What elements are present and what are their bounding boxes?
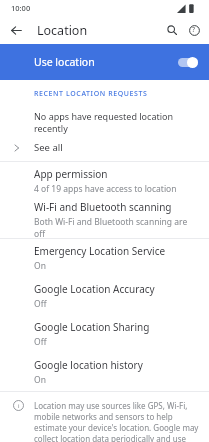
staticText: 4 of 19 apps have access to location	[34, 183, 177, 195]
button[interactable]: Google location history	[0, 353, 209, 391]
button[interactable]: See all	[0, 134, 209, 161]
button[interactable]: Wi-Fi and Bluetooth scanning	[0, 200, 209, 238]
staticText: Google Location Sharing	[34, 320, 150, 334]
staticText: Off	[34, 336, 47, 348]
button[interactable]: Google Location Sharing	[0, 315, 209, 353]
staticText: Location	[37, 22, 88, 39]
staticText: Google location history	[34, 358, 143, 372]
staticText: See all	[34, 141, 63, 154]
staticText: No apps have requested location recently	[34, 110, 209, 134]
staticText: On	[34, 374, 46, 386]
staticText: RECENT LOCATION REQUESTS	[34, 89, 148, 99]
button[interactable]: Use location	[0, 44, 209, 80]
button[interactable]: Help	[184, 20, 204, 40]
staticText: ?	[192, 25, 196, 35]
staticText: i	[18, 402, 20, 410]
staticText: Location may use sources like GPS, Wi-Fi…	[34, 400, 199, 442]
button[interactable]: Google Location Accuracy	[0, 277, 209, 315]
staticText: App permission	[34, 167, 108, 181]
staticText: Off	[34, 298, 47, 310]
staticText: Both Wi-Fi and Bluetooth scanning are of…	[34, 216, 197, 238]
button[interactable]: Search	[162, 20, 182, 40]
staticText: On	[34, 260, 46, 272]
staticText: 10:00	[11, 3, 31, 13]
button[interactable]: Emergency Location Service	[0, 239, 209, 277]
staticText: Wi-Fi and Bluetooth scanning	[34, 200, 172, 214]
staticText: Emergency Location Service	[34, 244, 166, 258]
staticText: Google Location Accuracy	[34, 282, 155, 296]
staticText: Use location	[34, 55, 95, 69]
button[interactable]: App permission	[0, 162, 209, 200]
button[interactable]: Back	[6, 20, 26, 40]
